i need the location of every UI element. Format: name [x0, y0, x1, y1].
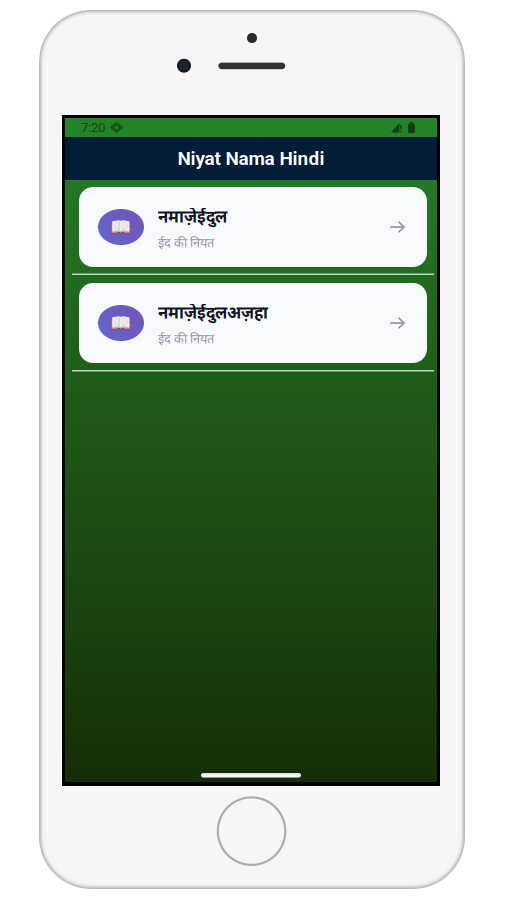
- staticText: ईद की नियत: [158, 332, 214, 348]
- staticText: 7:20: [81, 120, 105, 135]
- staticText: नमाज़ेईदुल: [158, 208, 227, 229]
- staticText: 📖: [110, 313, 132, 333]
- staticText: नमाज़ेईदुलअज़हा: [158, 304, 268, 325]
- button[interactable]: Niyat Nama Hindi: [65, 137, 437, 180]
- staticText: 📖: [110, 217, 132, 237]
- button[interactable]: 📖: [79, 187, 427, 267]
- staticText: ईद की नियत: [158, 236, 214, 252]
- staticText: Niyat Nama Hindi: [177, 147, 324, 170]
- button[interactable]: 📖: [79, 283, 427, 363]
